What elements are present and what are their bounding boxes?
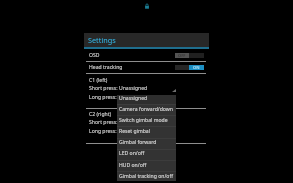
staticText: Camera forward/down xyxy=(119,106,173,113)
staticText: HUD on/off xyxy=(119,162,147,169)
button[interactable]: Short press: xyxy=(84,118,209,126)
button[interactable]: Gimbal tracking on/off xyxy=(117,172,176,180)
staticText: Settings xyxy=(88,35,116,45)
button[interactable]: Unassigned xyxy=(117,118,176,126)
staticText: ON xyxy=(193,65,200,70)
staticText: Unassigned xyxy=(119,94,148,101)
button[interactable]: Long press: xyxy=(84,127,209,135)
staticText: C1 (left) xyxy=(89,77,108,84)
staticText: LED on/off xyxy=(119,150,145,157)
button[interactable]: Unassigned xyxy=(117,84,176,92)
button[interactable]: Long press: xyxy=(84,93,209,101)
staticText: Short press: xyxy=(89,85,118,92)
staticText: Long press: xyxy=(89,128,117,135)
button[interactable]: HUD on/off xyxy=(117,161,176,169)
button[interactable]: Short press: xyxy=(84,84,209,92)
button[interactable]: Reset gimbal xyxy=(117,127,176,135)
button[interactable]: Unassigned xyxy=(117,93,176,101)
staticText: Unassigned xyxy=(119,95,148,102)
staticText: Gimbal forward xyxy=(119,139,157,146)
button[interactable]: Switch gimbal mode xyxy=(117,116,176,124)
button[interactable]: Gimbal forward xyxy=(117,138,176,146)
staticText: Unassigned xyxy=(119,85,148,92)
button[interactable]: Head tracking xyxy=(84,63,209,71)
button[interactable]: Unassigned xyxy=(117,127,176,135)
staticText: Unassigned xyxy=(119,128,148,135)
staticText: Switch gimbal mode xyxy=(119,117,168,124)
staticText: Long press: xyxy=(89,94,117,101)
staticText: C2 (right) xyxy=(89,111,112,118)
button[interactable]: Camera forward/down xyxy=(117,105,176,113)
button[interactable]: Unassigned xyxy=(117,94,176,102)
button[interactable]: OSD xyxy=(84,51,209,59)
staticText: OFF xyxy=(178,53,186,58)
staticText: Reset gimbal xyxy=(119,128,151,135)
staticText: Head tracking xyxy=(89,64,123,71)
other: Locked xyxy=(144,3,150,9)
button[interactable]: LED on/off xyxy=(117,149,176,157)
staticText: OSD xyxy=(89,52,100,59)
staticText: Short press: xyxy=(89,119,118,126)
staticText: Gimbal tracking on/off xyxy=(119,173,173,180)
staticText: Unassigned xyxy=(119,119,148,126)
